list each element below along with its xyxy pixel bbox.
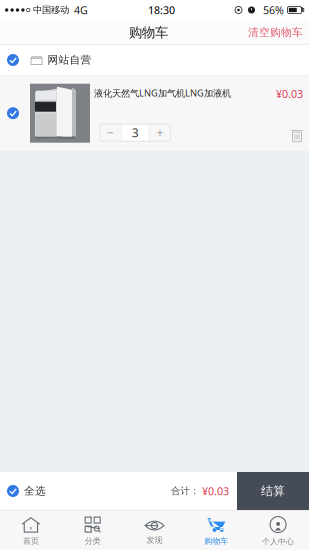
button[interactable]: 全选 bbox=[0, 472, 53, 510]
button[interactable]: 网站自营 bbox=[0, 45, 309, 75]
staticText: 3 bbox=[132, 125, 139, 141]
button[interactable]: 清空购物车 bbox=[248, 20, 309, 45]
staticText: 个人中心 bbox=[262, 537, 294, 546]
staticText: 网站自营 bbox=[47, 53, 91, 66]
button[interactable]: 购物车 bbox=[185, 510, 247, 550]
staticText: 56% bbox=[263, 3, 284, 17]
staticText: 4G bbox=[74, 3, 88, 17]
button[interactable]: Delete item bbox=[289, 124, 303, 142]
button[interactable]: 结算 bbox=[237, 472, 309, 510]
button[interactable]: 个人中心 bbox=[247, 510, 309, 550]
staticText: 发现 bbox=[146, 535, 162, 545]
staticText: 分类 bbox=[85, 536, 101, 546]
staticText: 清空购物车 bbox=[248, 26, 303, 39]
button[interactable]: 分类 bbox=[62, 510, 124, 550]
staticText: ¥0.03 bbox=[202, 484, 229, 498]
button[interactable]: Select item bbox=[0, 76, 30, 151]
staticText: 结算 bbox=[261, 484, 285, 498]
staticText: 18:30 bbox=[148, 3, 175, 17]
staticText: 购物车 bbox=[204, 536, 228, 546]
staticText: 液化天然气LNG加气机LNG加液机 bbox=[94, 87, 231, 99]
staticText: 合计： bbox=[171, 485, 199, 497]
staticText: 全选 bbox=[24, 484, 46, 497]
button[interactable]: 首页 bbox=[0, 510, 62, 550]
staticText: 购物车 bbox=[129, 24, 168, 41]
staticText: 中国移动 bbox=[33, 4, 69, 16]
staticText: 首页 bbox=[23, 536, 39, 546]
button[interactable]: Increase quantity bbox=[149, 124, 170, 141]
button[interactable]: Decrease quantity bbox=[100, 124, 121, 141]
staticText: + bbox=[156, 125, 163, 141]
staticText: − bbox=[107, 125, 114, 141]
button[interactable]: 发现 bbox=[124, 510, 185, 550]
staticText: ¥0.03 bbox=[276, 87, 303, 101]
